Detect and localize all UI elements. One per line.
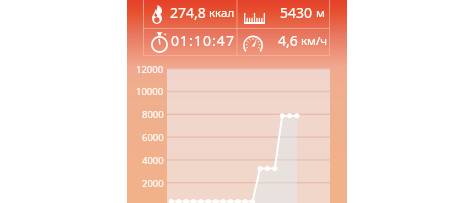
button[interactable]: Distance: [237, 0, 330, 28]
staticText: 274,8: [170, 3, 206, 22]
staticText: 2000: [142, 177, 164, 189]
staticText: 12000: [136, 63, 164, 75]
button[interactable]: Duration: [143, 28, 237, 56]
staticText: 5430: [280, 3, 313, 22]
other: Distance: [244, 13, 265, 24]
staticText: м: [316, 5, 325, 21]
staticText: 4,6: [278, 31, 298, 50]
staticText: 01:10:47: [171, 31, 235, 50]
staticText: 8000: [142, 108, 164, 120]
staticText: 10000: [136, 85, 164, 97]
button[interactable]: Calories: [143, 0, 237, 28]
other: Duration: [151, 32, 168, 52]
staticText: 6000: [142, 131, 164, 143]
other: Speed: [243, 35, 263, 52]
staticText: ккал: [209, 5, 235, 21]
button[interactable]: Speed: [237, 28, 330, 56]
staticText: км/ч: [301, 33, 327, 49]
staticText: 4000: [142, 154, 164, 166]
other: Calories: [151, 5, 164, 24]
